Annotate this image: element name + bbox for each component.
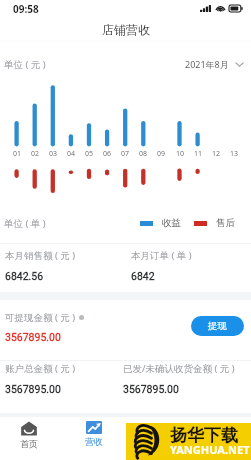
staticText: 05 (85, 149, 94, 159)
staticText: 首页 (20, 438, 38, 449)
staticText: 售后 (216, 217, 235, 229)
staticText: 02 (31, 149, 40, 159)
staticText: 08 (139, 149, 148, 159)
staticText: 09:58 (13, 2, 39, 16)
staticText: 本月销售额 ( 元 ) (5, 249, 76, 262)
staticText: 营收 (85, 436, 103, 447)
button[interactable]: 店铺营收 (0, 17, 251, 41)
staticText: 09 (157, 149, 166, 159)
button[interactable]: 提现 (191, 316, 244, 336)
staticText: 扬华下载 (170, 425, 238, 446)
staticText: 本月订单 ( 单 ) (131, 249, 192, 262)
staticText: 03 (49, 149, 58, 159)
staticText: 提现 (208, 320, 227, 332)
staticText: 07 (121, 149, 130, 159)
staticText: 10 (176, 149, 185, 159)
staticText: YANGHUA.NET (170, 442, 250, 457)
staticText: 11 (194, 149, 203, 159)
staticText: 2021年8月 (185, 58, 229, 70)
staticText: 04 (67, 149, 76, 159)
staticText: 已发/未确认收货金额 ( 元 ) (123, 362, 235, 375)
staticText: 3567895.00 (5, 331, 61, 343)
staticText: 单位 ( 元 ) (4, 58, 46, 71)
staticText: 收益 (162, 217, 181, 229)
staticText: 6842.56 (5, 270, 44, 282)
staticText: 12 (212, 149, 221, 159)
staticText: 账户总金额 ( 元 ) (5, 362, 76, 375)
staticText: 06 (103, 149, 112, 159)
staticText: 6842 (131, 270, 155, 282)
button[interactable]: 2021年8月 (185, 58, 244, 70)
button[interactable]: 首页 (7, 417, 51, 460)
staticText: 3567895.00 (5, 383, 61, 395)
staticText: 可提现金额 ( 元 ) (5, 311, 76, 324)
staticText: 13 (230, 149, 239, 159)
button[interactable]: 营收 (72, 417, 116, 460)
staticText: 01 (13, 149, 22, 159)
staticText: 单位 ( 单 ) (4, 217, 46, 230)
staticText: 3567895.00 (123, 383, 179, 395)
staticText: 店铺营收 (102, 22, 150, 37)
